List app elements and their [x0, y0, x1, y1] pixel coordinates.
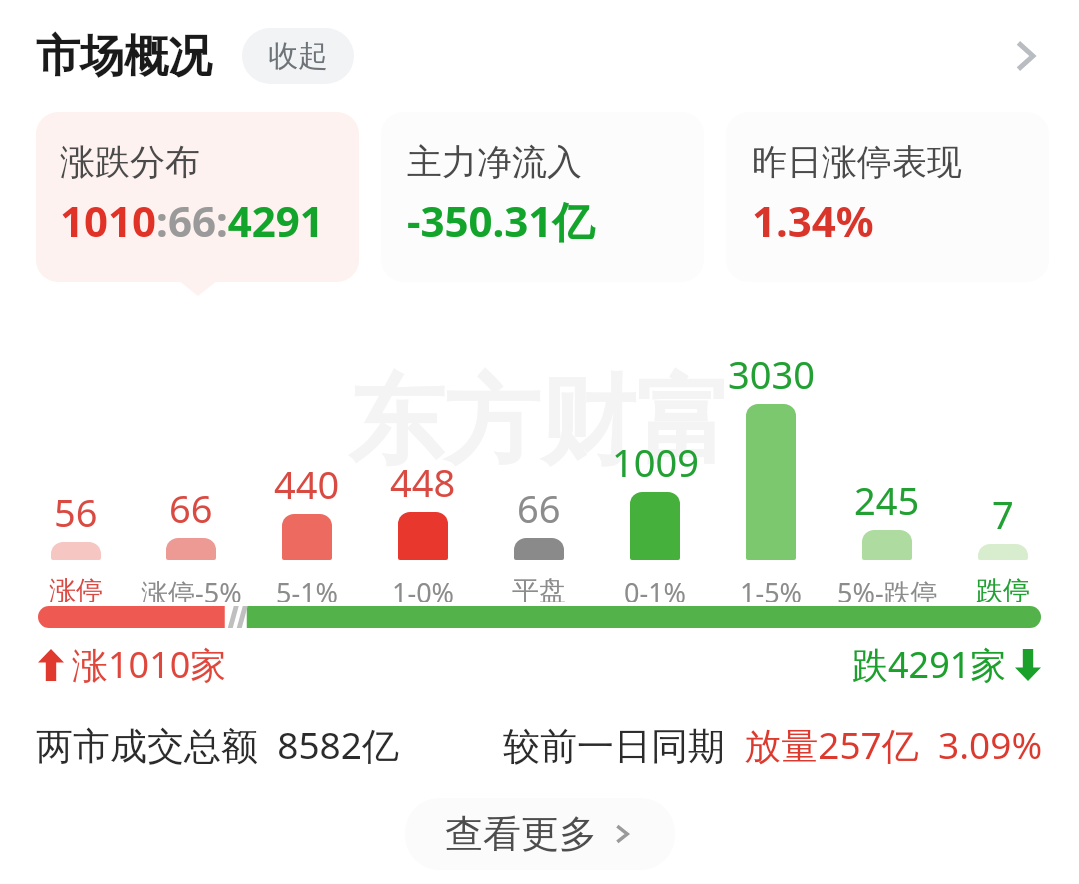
staticText: 448	[390, 456, 456, 508]
staticText: 收起	[268, 37, 328, 75]
staticText: 涨停-5%	[141, 574, 242, 602]
staticText: 5%-跌停	[837, 574, 938, 602]
staticText: 1009	[612, 436, 699, 488]
button[interactable]: 查看更多	[405, 798, 675, 870]
staticText: 7	[992, 488, 1014, 540]
staticText: -350.31亿	[407, 192, 595, 249]
staticText: 3030	[728, 348, 815, 400]
staticText: 东方财富	[348, 362, 732, 483]
button[interactable]: 涨跌分布	[36, 112, 359, 282]
button[interactable]: More	[997, 28, 1053, 84]
staticText: 涨1010家	[72, 640, 227, 689]
staticText: 跌4291家	[852, 640, 1007, 689]
staticText: 66	[517, 482, 561, 534]
staticText: 1-5%	[740, 574, 803, 602]
staticText: 跌停	[976, 574, 1030, 602]
staticText: 1-0%	[392, 574, 455, 602]
staticText: 查看更多	[445, 810, 597, 858]
staticText: 较前一日同期 放量257亿 3.09%	[503, 719, 1043, 770]
staticText: 440	[274, 458, 340, 510]
staticText: 245	[854, 474, 920, 526]
staticText: 66	[169, 482, 213, 534]
staticText: 56	[54, 486, 98, 538]
staticText: 1.34%	[752, 192, 874, 249]
staticText: 0-1%	[624, 574, 687, 602]
button[interactable]: 昨日涨停表现	[726, 112, 1049, 282]
staticText: 市场概况	[36, 29, 212, 84]
staticText: 两市成交总额 8582亿	[36, 719, 399, 770]
button[interactable]: 主力净流入	[381, 112, 704, 282]
staticText: 5-1%	[276, 574, 339, 602]
staticText: 昨日涨停表现	[752, 140, 962, 184]
staticText: 涨跌分布	[60, 140, 200, 184]
button[interactable]: 收起	[242, 28, 354, 84]
staticText: 主力净流入	[407, 140, 582, 184]
staticText: 平盘	[512, 574, 566, 602]
staticText: 涨停	[49, 574, 103, 602]
staticText: 1010:66:4291	[60, 192, 324, 249]
